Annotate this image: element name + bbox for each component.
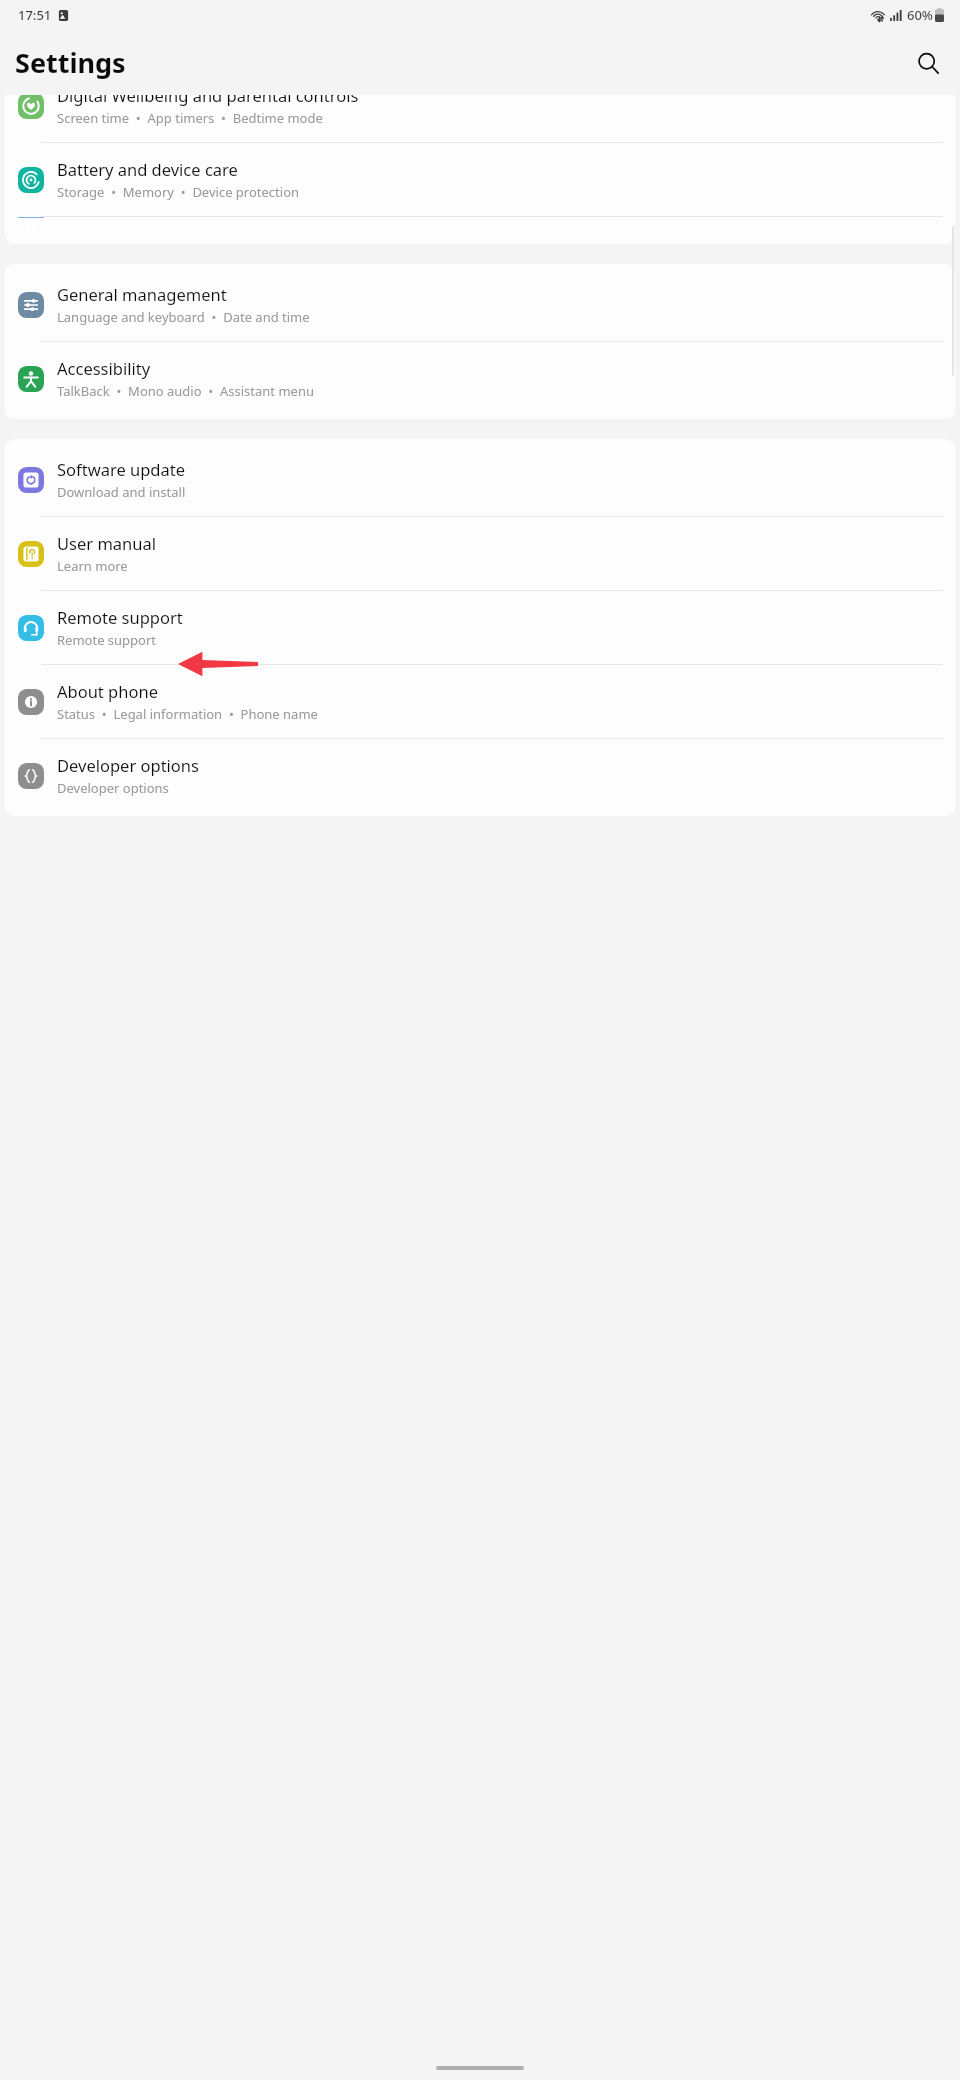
button[interactable]: Search [908,43,948,83]
staticText: Remote support [57,606,183,628]
staticText: Storage • Memory • Device protection [57,183,300,201]
button[interactable]: Accessibility [5,342,955,415]
staticText: Status • Legal information • Phone name [57,705,318,723]
staticText: Learn more [57,557,128,575]
staticText: User manual [57,532,156,554]
button[interactable]: User manual [5,517,955,590]
staticText: TalkBack • Mono audio • Assistant menu [57,382,314,400]
staticText: Screen time • App timers • Bedtime mode [57,109,323,127]
staticText: About phone [57,680,158,702]
button[interactable]: General management [5,268,955,341]
staticText: Accessibility [57,357,151,379]
staticText: Remote support [57,631,157,649]
button[interactable]: Software update [5,443,955,516]
staticText: 17:51 [18,6,52,24]
staticText: Download and install [57,483,186,501]
staticText: Battery and device care [57,158,238,180]
staticText: Developer options [57,779,169,797]
button[interactable]: About phone [5,665,955,738]
staticText: 60% [907,6,933,24]
button[interactable]: Developer options [5,739,955,812]
staticText: General management [57,283,227,305]
staticText: Software update [57,458,185,480]
staticText: Settings [15,44,126,81]
staticText: Digital Wellbeing and parental controls [57,95,359,106]
staticText: Language and keyboard • Date and time [57,308,310,326]
button[interactable]: Battery and device care [5,143,955,216]
staticText: Developer options [57,754,199,776]
button[interactable]: Apps [5,217,955,218]
button[interactable]: Remote support [5,591,955,664]
button[interactable]: Digital Wellbeing and parental controls [5,95,955,142]
